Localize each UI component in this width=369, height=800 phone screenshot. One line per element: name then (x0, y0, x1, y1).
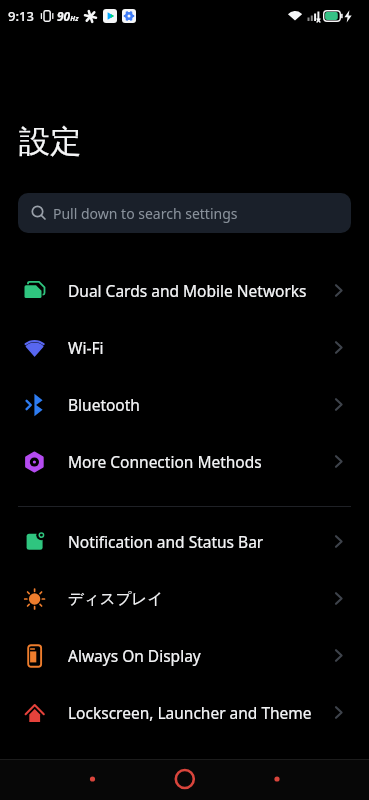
button[interactable]: Wi-Fi (0, 319, 369, 376)
button[interactable]: ディスプレイ (0, 570, 369, 627)
staticText: 90Hz (57, 8, 79, 24)
button[interactable]: Always On Display (0, 627, 369, 684)
button[interactable]: Pull down to search settings (18, 193, 351, 233)
staticText: 9:13 (8, 7, 34, 25)
button[interactable]: Notification and Status Bar (0, 513, 369, 570)
staticText: Dual Cards and Mobile Networks (68, 280, 307, 301)
button[interactable] (0, 759, 369, 800)
staticText: Wi-Fi (68, 337, 104, 358)
button[interactable]: More Connection Methods (0, 433, 369, 490)
staticText: ディスプレイ (68, 589, 164, 609)
staticText: Pull down to search settings (53, 204, 238, 223)
button[interactable]: Bluetooth (0, 376, 369, 433)
staticText: Notification and Status Bar (68, 531, 264, 552)
staticText: Always On Display (68, 645, 201, 666)
staticText: Bluetooth (68, 394, 140, 415)
staticText: Lockscreen, Launcher and Theme (68, 702, 312, 723)
button[interactable]: Dual Cards and Mobile Networks (0, 262, 369, 319)
staticText: More Connection Methods (68, 451, 262, 472)
button[interactable]: Lockscreen, Launcher and Theme (0, 684, 369, 741)
staticText: 設定 (19, 122, 81, 161)
